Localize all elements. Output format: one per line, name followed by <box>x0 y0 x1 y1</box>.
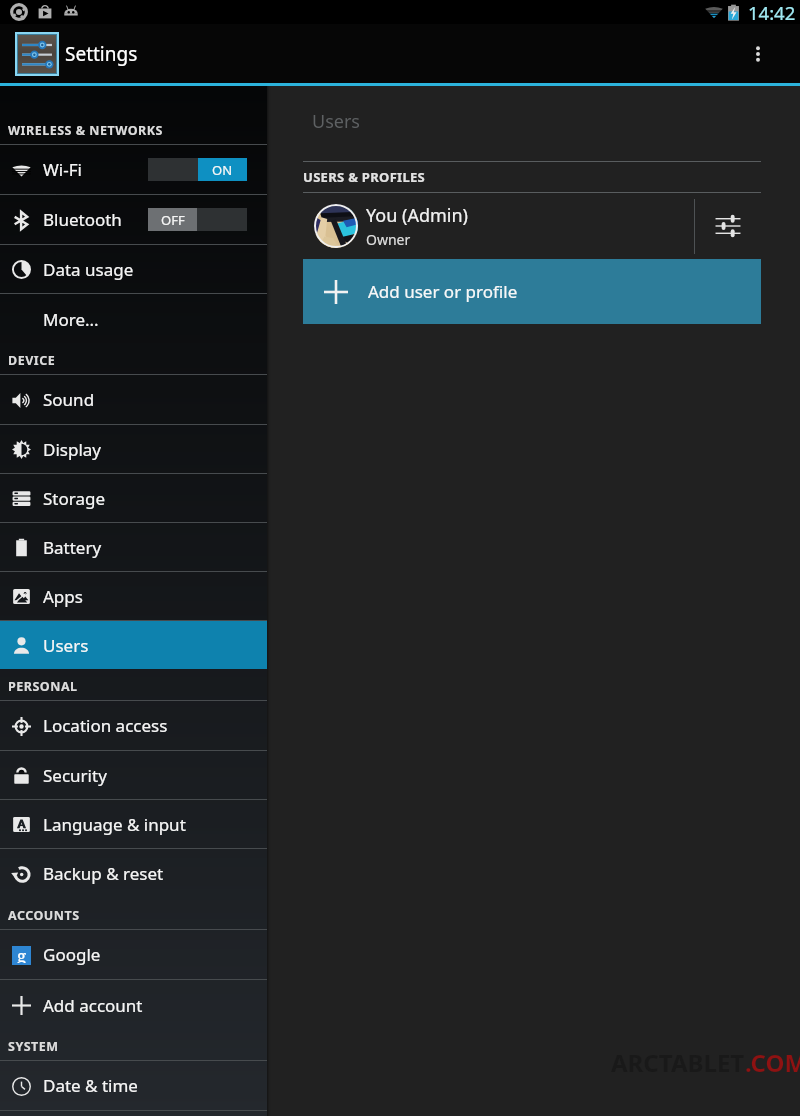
staticText: Wi-Fi <box>43 158 82 181</box>
staticText: 14:42 <box>748 0 796 24</box>
staticText: Backup & reset <box>43 862 164 885</box>
staticText: ON <box>212 161 233 179</box>
button[interactable]: ON <box>148 158 247 181</box>
button[interactable]: More... <box>0 294 267 344</box>
button[interactable]: Sound <box>0 375 267 424</box>
staticText: Sound <box>43 388 95 411</box>
button[interactable]: User settings <box>695 193 761 259</box>
staticText: Location access <box>43 714 168 737</box>
staticText: Owner <box>366 230 411 249</box>
staticText: More... <box>43 308 99 331</box>
staticText: SYSTEM <box>8 1038 59 1055</box>
staticText: Users <box>312 109 360 134</box>
button[interactable]: Language & input <box>0 800 267 848</box>
staticText: Language & input <box>43 813 186 836</box>
staticText: Battery <box>43 536 102 559</box>
button[interactable]: Storage <box>0 474 267 522</box>
staticText: ARCTABLET <box>611 1046 745 1079</box>
staticText: USERS & PROFILES <box>303 168 426 186</box>
staticText: Security <box>43 764 107 787</box>
button[interactable]: OFF <box>148 208 247 231</box>
button[interactable]: Battery <box>0 523 267 571</box>
staticText: Add user or profile <box>368 280 518 303</box>
button[interactable]: More options <box>734 30 782 78</box>
button[interactable]: Data usage <box>0 245 267 293</box>
staticText: .COM <box>745 1046 800 1079</box>
button[interactable]: Wi-Fi <box>0 145 267 194</box>
button[interactable]: Date & time <box>0 1061 267 1110</box>
staticText: PERSONAL <box>8 678 78 695</box>
button[interactable]: Bluetooth <box>0 195 267 244</box>
staticText: Storage <box>43 487 106 510</box>
button[interactable]: Location access <box>0 701 267 750</box>
button[interactable]: Settings <box>15 32 59 76</box>
button[interactable]: Users <box>0 621 267 669</box>
staticText: ACCOUNTS <box>8 907 80 924</box>
button[interactable]: Add user or profile <box>303 259 761 324</box>
staticText: WIRELESS & NETWORKS <box>8 122 163 139</box>
staticText: Apps <box>43 585 83 608</box>
button[interactable]: Apps <box>0 572 267 620</box>
staticText: Settings <box>65 41 138 67</box>
staticText: Users <box>43 634 89 657</box>
button[interactable]: Backup & reset <box>0 849 267 898</box>
staticText: Bluetooth <box>43 208 122 231</box>
staticText: Google <box>43 943 101 966</box>
staticText: You (Admin) <box>366 203 468 228</box>
staticText: OFF <box>161 211 185 229</box>
staticText: Date & time <box>43 1074 138 1097</box>
button[interactable]: You (Admin) <box>303 193 761 259</box>
staticText: Data usage <box>43 258 134 281</box>
staticText: Display <box>43 438 101 461</box>
staticText: Add account <box>43 994 143 1017</box>
button[interactable]: g <box>0 930 267 979</box>
button[interactable]: Security <box>0 751 267 799</box>
button[interactable]: Display <box>0 425 267 473</box>
button[interactable]: Add account <box>0 980 267 1030</box>
staticText: DEVICE <box>8 352 56 369</box>
staticText: g <box>17 944 27 963</box>
